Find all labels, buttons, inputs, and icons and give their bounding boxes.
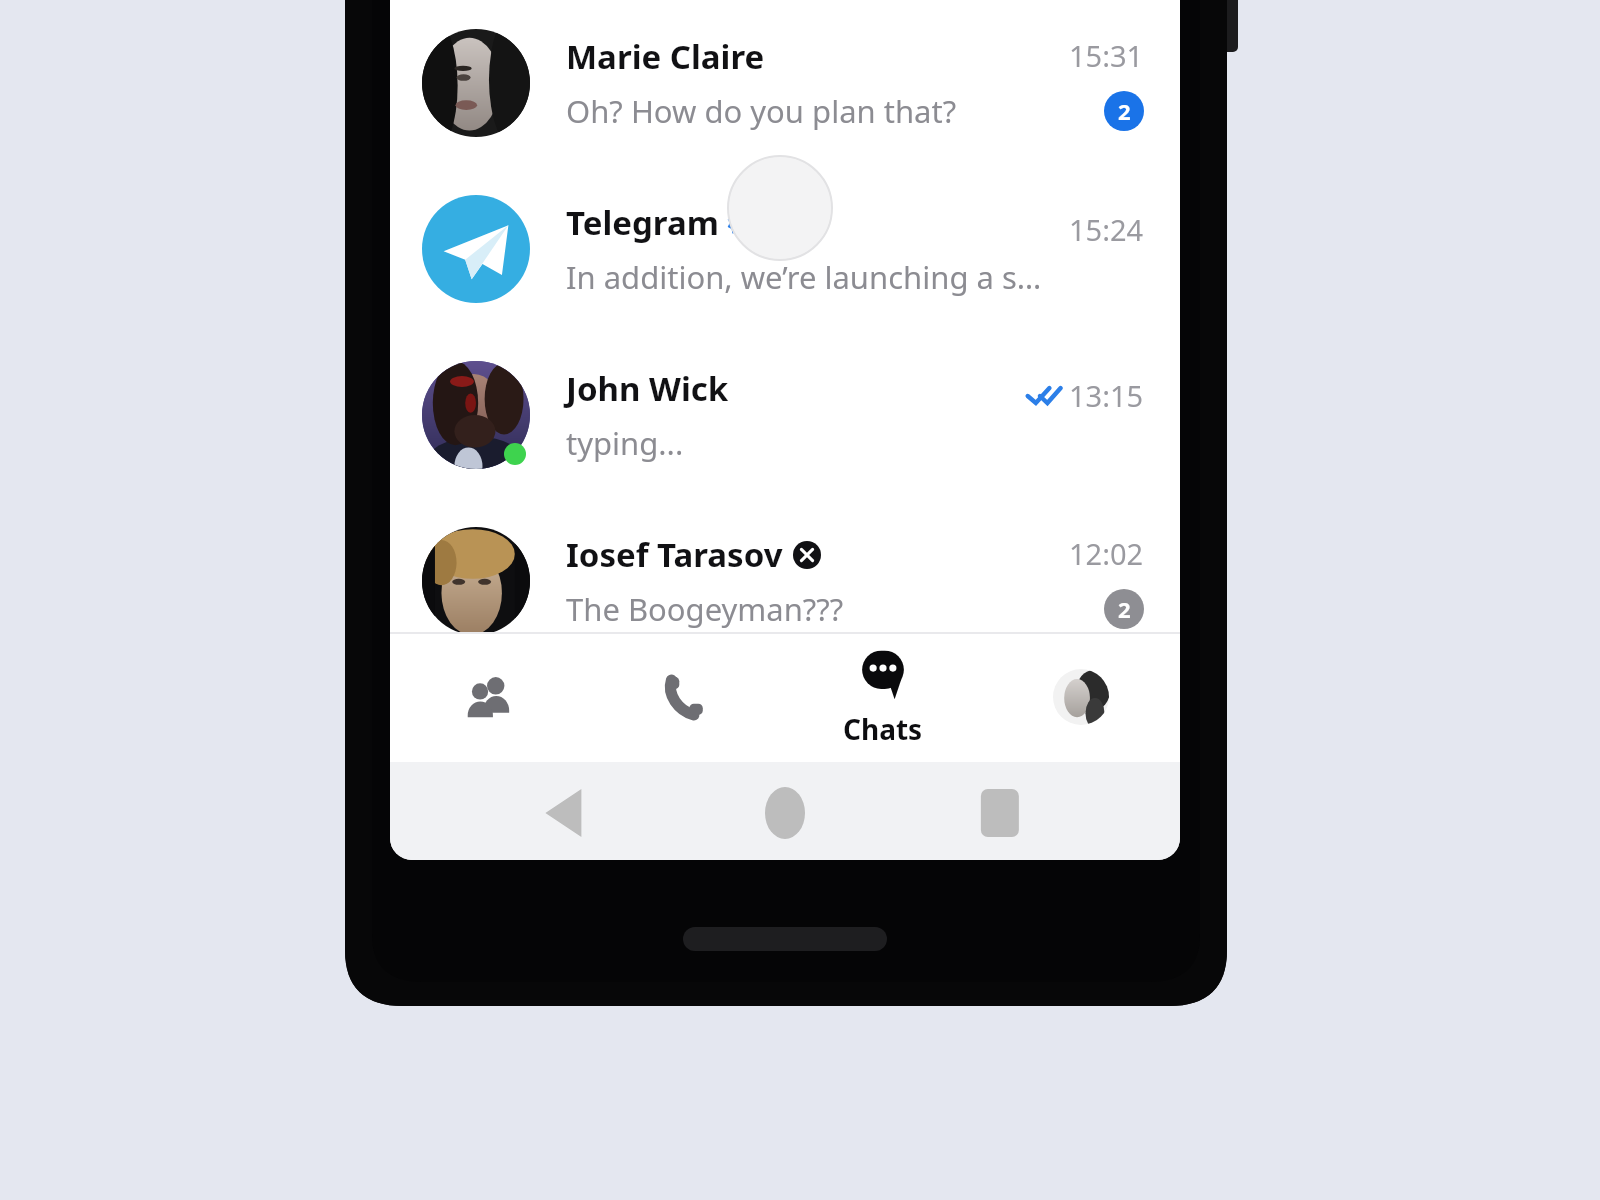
staticText: Oh? How do you plan that? <box>566 90 957 132</box>
staticText: Telegram <box>566 200 719 245</box>
staticText: Chats <box>843 710 923 748</box>
staticText: Iosef Tarasov <box>566 532 783 577</box>
staticText: 2 <box>1118 594 1131 624</box>
button[interactable]: Chats <box>784 632 982 762</box>
staticText: 12:02 <box>1069 534 1144 573</box>
staticText: Abram <box>566 698 676 743</box>
staticText: John Wick <box>566 366 729 411</box>
staticText: 2 <box>1118 96 1131 126</box>
button[interactable]: Iosef Tarasov <box>390 498 1180 664</box>
staticText: The Boogeyman??? <box>566 588 844 630</box>
button[interactable]: John Wick <box>390 332 1180 498</box>
staticText: 15:31 <box>1069 36 1144 75</box>
button[interactable]: Calls <box>587 632 784 762</box>
staticText: 13:15 <box>1069 376 1144 415</box>
button[interactable]: Marie Claire <box>390 0 1180 166</box>
staticText: … <box>566 754 591 796</box>
button[interactable]: Contacts <box>390 632 587 762</box>
staticText: In addition, we’re launching a separate… <box>566 256 1053 298</box>
staticText: 15:24 <box>1069 210 1144 249</box>
button[interactable]: Abram <box>390 664 1180 830</box>
button[interactable]: Profile <box>982 632 1180 762</box>
staticText: Marie Claire <box>566 34 765 79</box>
staticText: 11:10 <box>1069 708 1144 747</box>
button[interactable]: Telegram <box>390 166 1180 332</box>
staticText: typing... <box>566 422 684 464</box>
